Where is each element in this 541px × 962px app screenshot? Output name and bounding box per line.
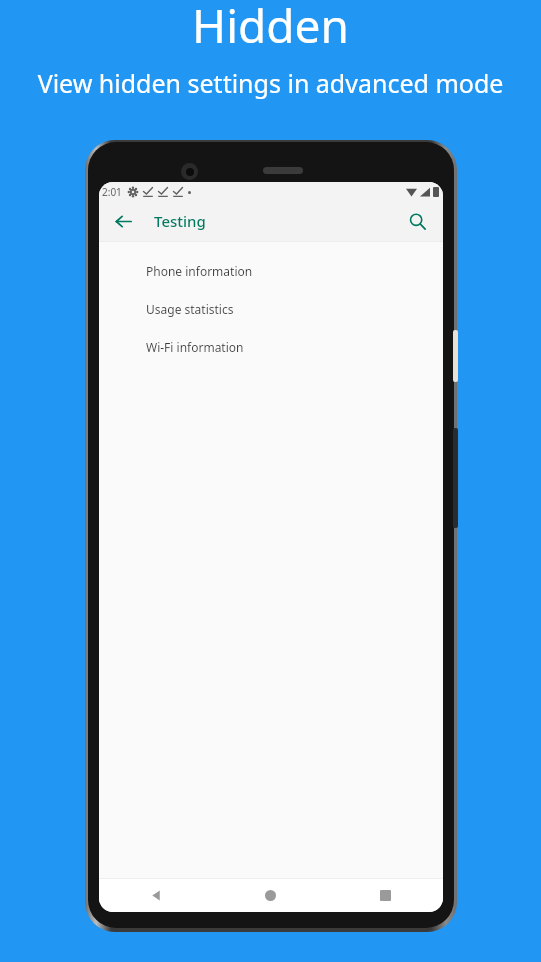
staticText: Usage statistics: [146, 301, 234, 317]
button[interactable]: Recent apps: [328, 878, 443, 912]
button[interactable]: Search: [401, 205, 433, 237]
button[interactable]: Home: [213, 878, 328, 912]
staticText: 2:01: [102, 185, 122, 199]
button[interactable]: Back: [99, 878, 213, 912]
button[interactable]: Back: [107, 205, 139, 237]
staticText: View hidden settings in advanced mode: [14, 66, 527, 100]
button[interactable]: Phone information: [99, 252, 443, 290]
staticText: Hidden: [0, 0, 541, 57]
button[interactable]: Wi-Fi information: [99, 328, 443, 366]
staticText: Wi-Fi information: [146, 339, 244, 355]
staticText: Phone information: [146, 263, 253, 279]
button[interactable]: Usage statistics: [99, 290, 443, 328]
staticText: Testing: [154, 211, 206, 231]
